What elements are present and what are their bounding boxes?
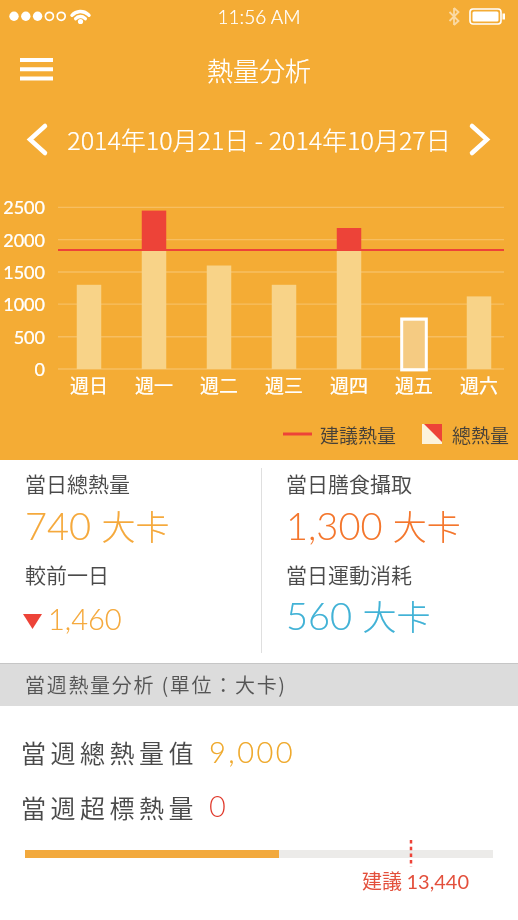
staticText: 週三: [249, 371, 319, 399]
staticText: 當週熱量分析 (單位：大卡): [25, 670, 287, 699]
staticText: 740 大卡: [25, 501, 170, 550]
staticText: 總熱量: [452, 421, 510, 449]
button[interactable]: [16, 115, 58, 163]
button[interactable]: [10, 48, 62, 90]
staticText: 9,000: [209, 734, 296, 769]
staticText: 週二: [184, 371, 254, 399]
staticText: 1,300 大卡: [286, 501, 461, 550]
staticText: 週六: [444, 371, 514, 399]
staticText: 2000: [0, 229, 45, 251]
staticText: 當週超標熱量: [21, 789, 199, 825]
staticText: 1000: [0, 293, 45, 315]
staticText: 500: [0, 326, 45, 348]
staticText: 週一: [119, 371, 189, 399]
staticText: 當日總熱量: [25, 468, 130, 498]
staticText: 週日: [54, 371, 124, 399]
staticText: 建議 13,440: [362, 866, 470, 895]
button[interactable]: [458, 115, 500, 163]
staticText: 熱量分析: [0, 51, 518, 89]
staticText: 當日運動消耗: [286, 559, 412, 589]
staticText: 建議熱量: [320, 421, 397, 449]
staticText: 2500: [0, 196, 45, 218]
staticText: 0: [209, 788, 226, 823]
staticText: 11:56 AM: [0, 5, 518, 28]
staticText: 週四: [314, 371, 384, 399]
staticText: 1500: [0, 261, 45, 283]
staticText: 1,460: [48, 601, 122, 636]
staticText: 當日膳食攝取: [286, 468, 412, 498]
staticText: 0: [0, 358, 45, 380]
staticText: 較前一日: [25, 559, 109, 589]
staticText: 2014年10月21日 - 2014年10月27日: [0, 121, 518, 157]
staticText: 當週總熱量值: [21, 734, 199, 770]
staticText: 560 大卡: [286, 591, 431, 640]
staticText: 週五: [379, 371, 449, 399]
